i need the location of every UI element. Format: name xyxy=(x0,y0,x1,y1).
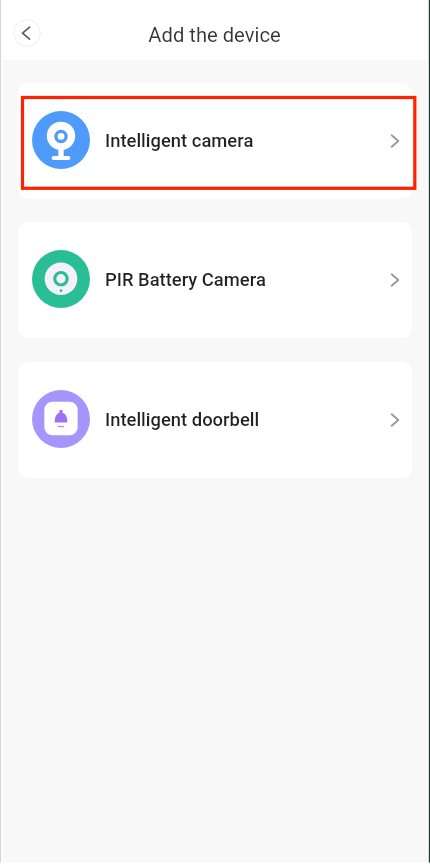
button[interactable]: Back xyxy=(13,19,41,47)
button[interactable]: Intelligent camera xyxy=(18,83,412,199)
staticText: Add the device xyxy=(148,23,281,47)
button[interactable]: PIR Battery Camera xyxy=(18,222,412,338)
staticText: Intelligent camera xyxy=(105,130,254,152)
staticText: PIR Battery Camera xyxy=(105,269,266,291)
staticText: Intelligent doorbell xyxy=(105,409,260,431)
button[interactable]: Intelligent doorbell xyxy=(18,362,412,478)
